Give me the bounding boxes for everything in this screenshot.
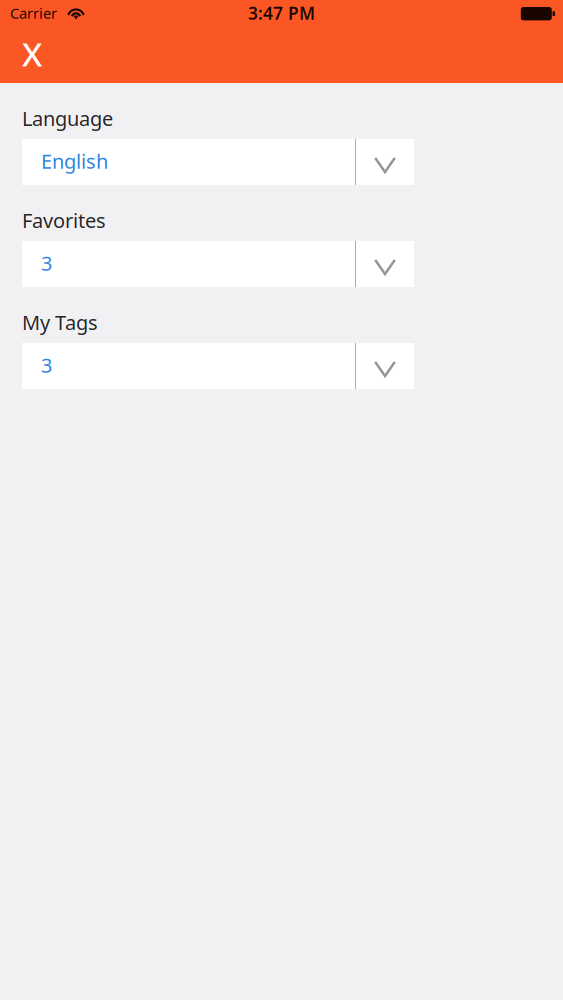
- staticText: Favorites: [22, 207, 106, 234]
- button[interactable]: My Tags: [22, 343, 414, 389]
- button[interactable]: Close: [10, 32, 54, 76]
- staticText: My Tags: [22, 309, 98, 336]
- button[interactable]: Favorites: [22, 241, 414, 287]
- button[interactable]: Language: [22, 139, 414, 185]
- staticText: 3:47 PM: [248, 1, 315, 24]
- staticText: Carrier: [10, 3, 57, 23]
- staticText: 3: [41, 352, 52, 378]
- staticText: 3: [41, 250, 52, 276]
- staticText: X: [22, 31, 42, 76]
- staticText: English: [41, 148, 108, 174]
- staticText: Language: [22, 105, 113, 132]
